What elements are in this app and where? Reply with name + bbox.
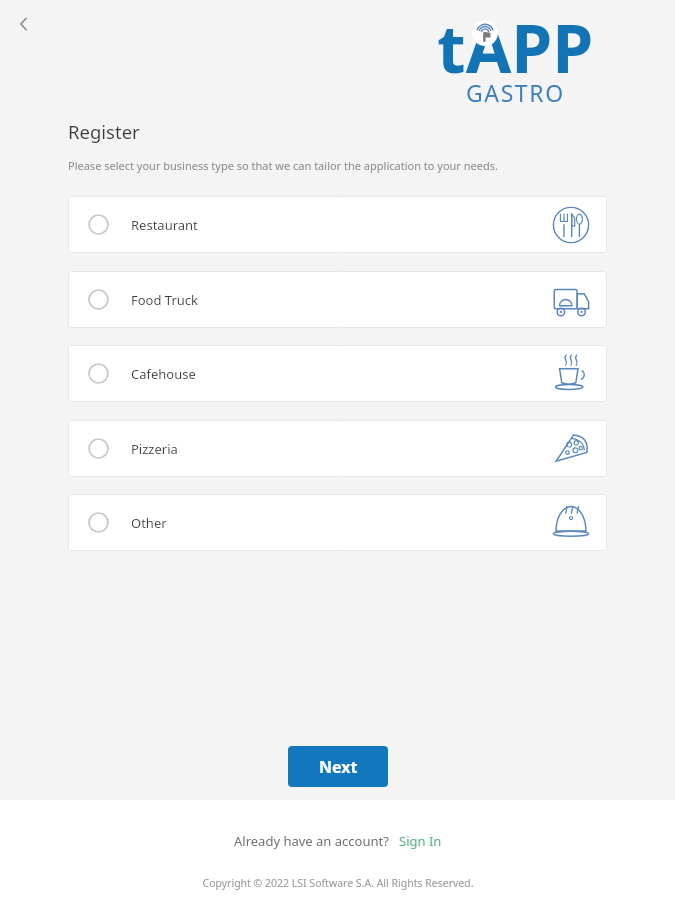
staticText: Already have an account? [234,832,389,850]
button[interactable]: Other [68,494,607,551]
staticText: Sign In [399,832,442,850]
staticText: Other [131,514,167,532]
staticText: GASTRO [466,77,565,108]
button[interactable]: Back [4,4,44,44]
button[interactable]: Restaurant [68,196,607,253]
button[interactable]: Sign In [399,832,442,850]
button[interactable]: Pizzeria [68,420,607,477]
staticText: tAPP [437,2,594,86]
staticText: Please select your business type so that… [68,158,498,173]
staticText: Restaurant [131,216,198,234]
staticText: Food Truck [131,291,199,309]
staticText: Pizzeria [131,440,178,458]
button[interactable]: Cafehouse [68,345,607,402]
staticText: Copyright © 2022 LSI Software S.A. All R… [202,876,474,890]
staticText: Cafehouse [131,365,196,383]
staticText: Next [319,756,358,778]
staticText: Register [68,119,140,144]
button[interactable]: Food Truck [68,271,607,328]
button[interactable]: Next [288,746,388,787]
